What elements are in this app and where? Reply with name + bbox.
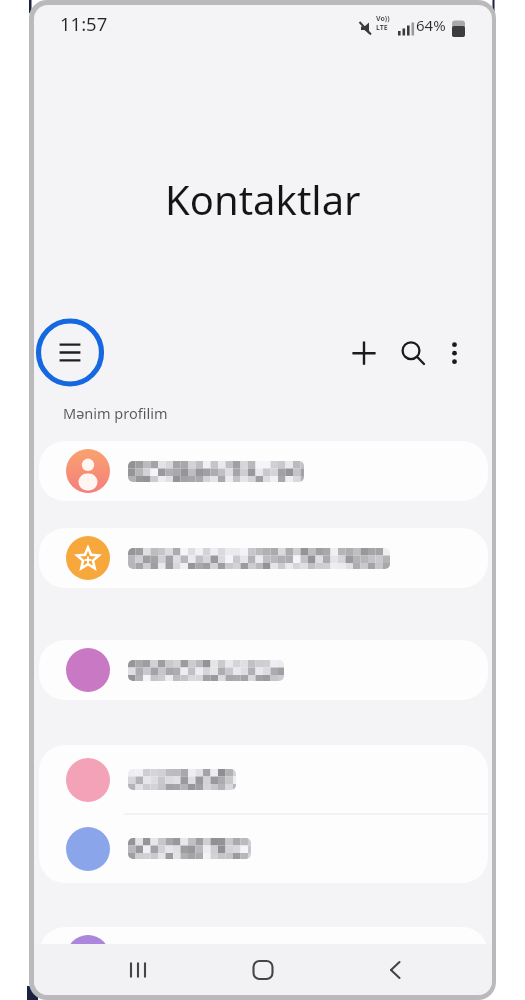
staticText: Kontaktlar <box>165 172 361 226</box>
staticText: 64% <box>416 15 446 35</box>
button[interactable] <box>39 927 488 987</box>
staticText: 11:57 <box>60 11 108 36</box>
button[interactable] <box>344 333 384 373</box>
button[interactable] <box>39 441 488 501</box>
button[interactable] <box>436 333 474 373</box>
button[interactable] <box>114 946 162 994</box>
button[interactable] <box>391 333 431 373</box>
staticText: Mənim profilim <box>63 403 168 423</box>
button[interactable] <box>39 528 488 588</box>
staticText: LTE <box>376 23 388 33</box>
button[interactable] <box>39 814 488 883</box>
button[interactable] <box>371 946 419 994</box>
staticText: Vo)) <box>376 14 390 24</box>
button[interactable] <box>36 318 104 387</box>
button[interactable] <box>239 946 287 994</box>
button[interactable] <box>39 640 488 700</box>
button[interactable] <box>39 745 488 814</box>
